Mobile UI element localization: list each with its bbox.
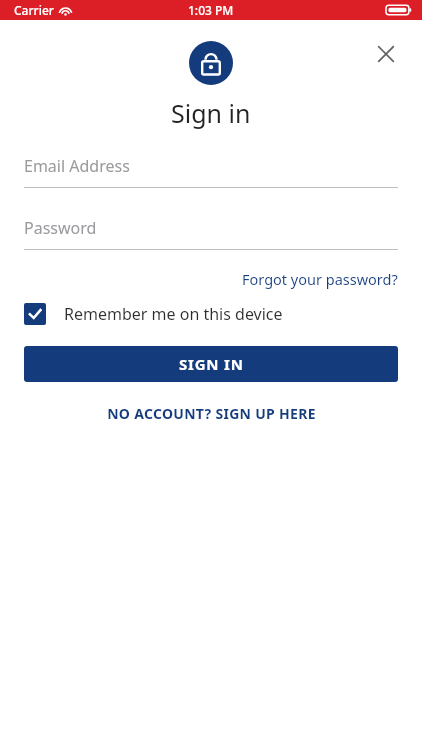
button[interactable]: SIGN IN bbox=[24, 346, 398, 382]
staticText: SIGN IN bbox=[179, 354, 244, 374]
staticText: Sign in bbox=[171, 96, 251, 130]
button[interactable]: Remember me on this device bbox=[24, 303, 398, 325]
staticText: Remember me on this device bbox=[64, 303, 283, 325]
staticText: 1:03 PM bbox=[188, 2, 234, 18]
button[interactable]: Password bbox=[24, 214, 398, 250]
button[interactable]: NO ACCOUNT? SIGN UP HERE bbox=[24, 398, 398, 429]
staticText: NO ACCOUNT? SIGN UP HERE bbox=[107, 404, 316, 423]
button[interactable]: Close bbox=[364, 32, 408, 76]
staticText: Email Address bbox=[24, 155, 130, 177]
staticText: Password bbox=[24, 217, 97, 239]
button[interactable]: Email Address bbox=[24, 152, 398, 188]
staticText: Forgot your password? bbox=[242, 269, 398, 289]
staticText: Carrier bbox=[14, 2, 54, 18]
button[interactable]: Forgot your password? bbox=[242, 267, 398, 291]
